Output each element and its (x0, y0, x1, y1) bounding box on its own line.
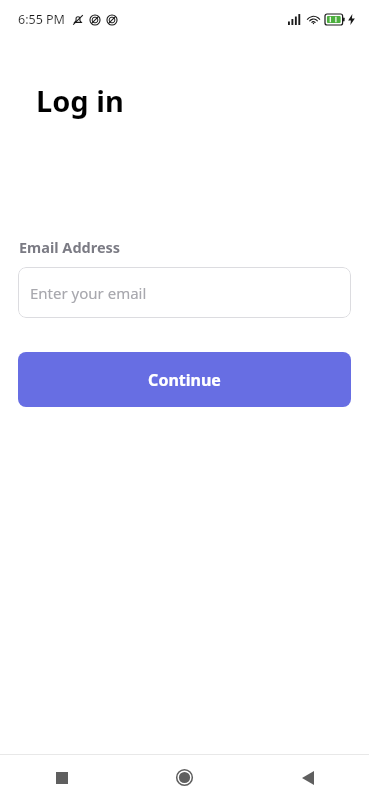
button[interactable]: Enter your email (18, 267, 351, 318)
button[interactable]: Home (123, 755, 246, 800)
staticText: Email Address (19, 237, 121, 257)
button[interactable]: Back (246, 755, 369, 800)
staticText: Continue (148, 369, 221, 391)
button[interactable]: Recent apps (0, 755, 123, 800)
staticText: 6:55 PM (18, 11, 65, 28)
staticText: Enter your email (30, 283, 147, 303)
button[interactable]: Continue (18, 352, 351, 407)
staticText: Log in (36, 81, 124, 120)
